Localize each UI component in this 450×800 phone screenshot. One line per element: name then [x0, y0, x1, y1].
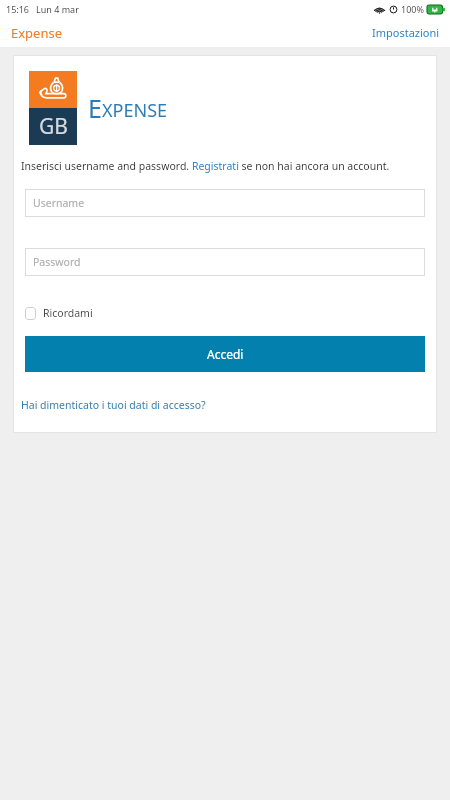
button[interactable]: Impostazioni: [362, 21, 450, 44]
button[interactable]: Expense: [0, 20, 74, 46]
staticText: Hai dimenticato i tuoi dati di accesso?: [21, 398, 206, 412]
staticText: Password: [33, 255, 81, 269]
staticText: Impostazioni: [372, 25, 440, 40]
staticText: Username: [33, 196, 85, 210]
staticText: XPENSE: [102, 98, 168, 123]
staticText: Accedi: [207, 346, 244, 362]
staticText: GB: [39, 112, 68, 141]
button[interactable]: Ricordami: [25, 304, 101, 322]
staticText: Lun 4 mar: [36, 3, 79, 15]
button[interactable]: Hai dimenticato i tuoi dati di accesso?: [21, 396, 206, 414]
button[interactable]: Password: [25, 248, 425, 276]
staticText: 100%: [401, 3, 424, 15]
button[interactable]: Accedi: [25, 336, 425, 372]
staticText: Ricordami: [43, 306, 93, 320]
button[interactable]: Username: [25, 189, 425, 217]
staticText: Inserisci username and password. Registr…: [21, 159, 390, 173]
staticText: Expense: [11, 24, 63, 42]
staticText: E: [88, 91, 102, 125]
staticText: 15:16: [6, 3, 30, 15]
